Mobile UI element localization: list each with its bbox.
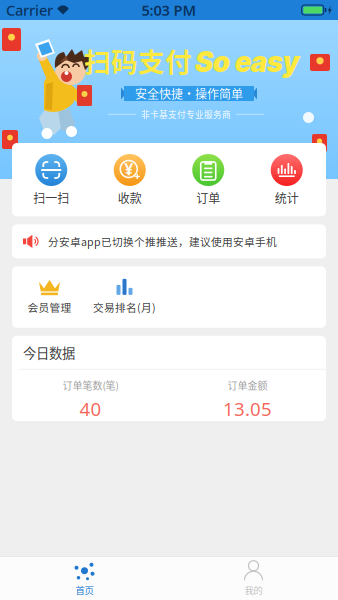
- staticText: Carrier: [6, 0, 53, 20]
- staticText: 订单金额: [227, 378, 267, 392]
- staticText: 5:03 PM: [141, 0, 196, 20]
- button[interactable]: 统计: [247, 154, 326, 206]
- staticText: 我的: [244, 583, 262, 597]
- button[interactable]: 我的: [169, 560, 338, 597]
- staticText: So easy: [195, 45, 299, 79]
- button[interactable]: 分安卓app已切换个推推送，建议使用安卓手机: [12, 224, 326, 258]
- staticText: 收款: [118, 189, 142, 206]
- staticText: ¥: [124, 158, 133, 180]
- staticText: 非卡基支付专业服务商: [141, 108, 231, 120]
- button[interactable]: 交易排名(月): [87, 278, 162, 315]
- staticText: 订单笔数(笔): [62, 378, 118, 392]
- staticText: 订单: [196, 189, 220, 206]
- staticText: 今日数据: [23, 343, 75, 362]
- button[interactable]: 订单: [169, 154, 247, 206]
- staticText: 会员管理: [27, 299, 71, 315]
- staticText: 分安卓app已切换个推推送，建议使用安卓手机: [48, 234, 277, 249]
- button[interactable]: 首页: [0, 560, 169, 597]
- staticText: 首页: [75, 583, 93, 597]
- button[interactable]: 会员管理: [12, 278, 87, 315]
- staticText: 扫一扫: [33, 189, 69, 206]
- staticText: 交易排名(月): [93, 299, 156, 315]
- staticText: 40: [79, 396, 101, 421]
- button[interactable]: 扫一扫: [12, 154, 90, 206]
- button[interactable]: ¥: [90, 154, 169, 206]
- staticText: 扫码支付: [84, 41, 192, 80]
- staticText: 统计: [275, 189, 299, 206]
- staticText: 13.05: [223, 396, 272, 421]
- staticText: 安全快捷·操作简单: [135, 85, 243, 102]
